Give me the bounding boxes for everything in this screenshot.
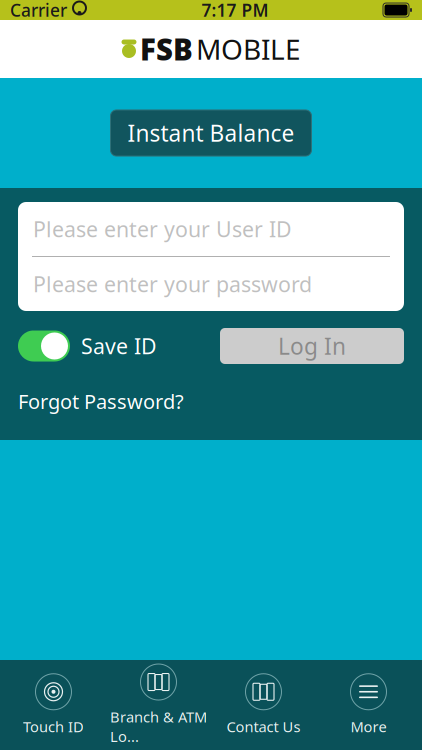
button[interactable]: More: [316, 673, 421, 737]
staticText: FSB: [140, 29, 193, 68]
button[interactable]: Branch & ATM Lo...: [106, 673, 211, 737]
staticText: Save ID: [81, 332, 157, 360]
button[interactable]: Instant Balance: [110, 110, 311, 156]
staticText: Touch ID: [23, 717, 84, 736]
staticText: Forgot Password?: [18, 388, 184, 415]
staticText: 7:17 PM: [201, 0, 268, 21]
staticText: Please enter your User ID: [33, 215, 292, 243]
staticText: Please enter your password: [33, 270, 312, 298]
staticText: Contact Us: [226, 717, 300, 736]
staticText: Instant Balance: [127, 118, 294, 148]
button[interactable]: Touch ID: [1, 673, 106, 737]
staticText: Log In: [278, 331, 346, 361]
staticText: [67, 0, 72, 21]
staticText: More: [350, 717, 386, 736]
button[interactable]: Save ID: [18, 330, 157, 361]
staticText: Carrier: [10, 0, 67, 21]
button[interactable]: Forgot Password?: [18, 388, 184, 415]
button[interactable]: Contact Us: [211, 673, 316, 737]
button[interactable]: Log In: [220, 328, 404, 364]
staticText: Branch & ATM Lo...: [110, 707, 207, 746]
staticText: MOBILE: [196, 30, 301, 68]
